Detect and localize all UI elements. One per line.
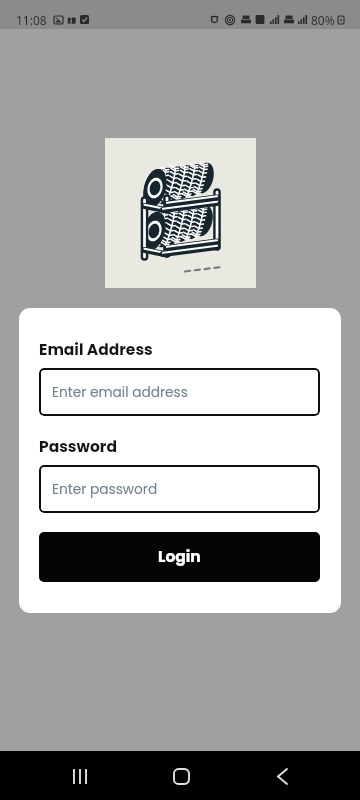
- staticText: 80%: [311, 12, 335, 28]
- button[interactable]: Back: [258, 752, 306, 800]
- staticText: Email Address: [39, 339, 153, 361]
- button[interactable]: Home: [157, 752, 205, 800]
- staticText: 11:08: [16, 12, 47, 28]
- button[interactable]: Enter password: [39, 465, 320, 513]
- button[interactable]: Login: [39, 532, 320, 582]
- staticText: Password: [39, 436, 117, 458]
- staticText: Enter password: [52, 480, 158, 499]
- button[interactable]: Recent apps: [56, 752, 104, 800]
- button[interactable]: Enter email address: [39, 368, 320, 416]
- staticText: Enter email address: [52, 383, 188, 402]
- staticText: Login: [158, 546, 201, 568]
